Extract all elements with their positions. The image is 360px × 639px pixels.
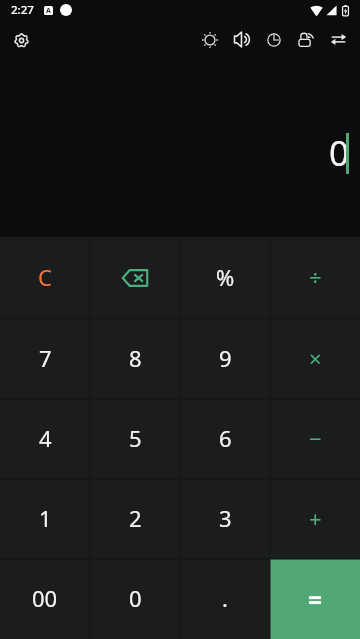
button[interactable]: 7 bbox=[0, 318, 90, 399]
button[interactable]: 9 bbox=[180, 318, 270, 399]
button[interactable]: Volume bbox=[226, 24, 258, 55]
staticText: . bbox=[222, 583, 228, 613]
button[interactable]: 00 bbox=[0, 559, 90, 639]
button[interactable]: Backspace bbox=[90, 237, 180, 318]
button[interactable]: 6 bbox=[180, 399, 270, 479]
staticText: 3 bbox=[219, 503, 232, 533]
staticText: 5 bbox=[129, 423, 142, 453]
button[interactable]: Settings bbox=[6, 25, 36, 55]
button[interactable]: 2 bbox=[90, 479, 180, 559]
staticText: 7 bbox=[39, 343, 52, 373]
staticText: + bbox=[309, 503, 322, 533]
staticText: C bbox=[38, 262, 52, 292]
staticText: 4 bbox=[39, 423, 52, 453]
staticText: 0 bbox=[129, 583, 142, 613]
button[interactable]: % bbox=[180, 237, 270, 318]
staticText: 0 bbox=[329, 129, 350, 177]
staticText: 9 bbox=[219, 343, 232, 373]
button[interactable]: C bbox=[0, 237, 90, 318]
button[interactable]: 1 bbox=[0, 479, 90, 559]
staticText: 1 bbox=[39, 503, 52, 533]
button[interactable]: × bbox=[270, 318, 360, 399]
button[interactable]: 5 bbox=[90, 399, 180, 479]
staticText: A bbox=[46, 6, 51, 15]
staticText: × bbox=[309, 343, 322, 373]
button[interactable]: Brightness bbox=[194, 24, 226, 55]
staticText: 2:27 bbox=[11, 2, 34, 18]
staticText: ÷ bbox=[309, 262, 322, 292]
button[interactable]: Convert bbox=[322, 24, 354, 55]
staticText: 8 bbox=[129, 343, 142, 373]
button[interactable]: − bbox=[270, 399, 360, 479]
button[interactable]: 8 bbox=[90, 318, 180, 399]
button[interactable]: Equals bbox=[270, 559, 360, 639]
staticText: − bbox=[309, 423, 322, 453]
button[interactable]: 0 bbox=[90, 559, 180, 639]
staticText: 6 bbox=[219, 423, 232, 453]
staticText: 00 bbox=[32, 583, 58, 613]
staticText: 2 bbox=[129, 503, 142, 533]
button[interactable]: + bbox=[270, 479, 360, 559]
button[interactable]: ÷ bbox=[270, 237, 360, 318]
button[interactable]: 4 bbox=[0, 399, 90, 479]
button[interactable]: History bbox=[258, 24, 290, 55]
button[interactable]: Unlock bbox=[290, 24, 322, 55]
button[interactable]: . bbox=[180, 559, 270, 639]
staticText: % bbox=[216, 262, 235, 292]
button[interactable]: 3 bbox=[180, 479, 270, 559]
